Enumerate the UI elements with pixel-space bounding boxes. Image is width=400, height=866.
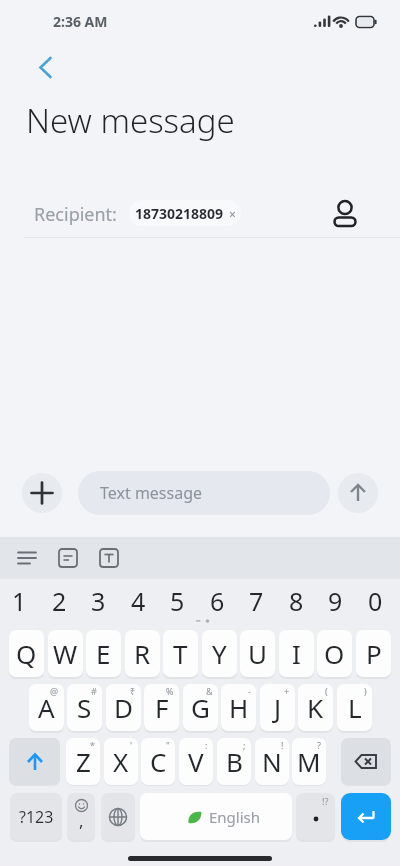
- button[interactable]: [10, 543, 44, 573]
- button[interactable]: [341, 793, 391, 840]
- button[interactable]: English: [140, 793, 292, 840]
- staticText: New message: [26, 98, 235, 143]
- staticText: 2:36 AM: [53, 12, 108, 31]
- button[interactable]: E: [86, 630, 121, 677]
- button[interactable]: O: [317, 630, 352, 677]
- staticText: ": [166, 739, 170, 751]
- button[interactable]: [341, 738, 391, 785]
- button[interactable]: 3: [79, 582, 118, 620]
- button[interactable]: 18730218809: [129, 200, 241, 226]
- staticText: N: [262, 744, 282, 779]
- button[interactable]: F: [144, 684, 179, 731]
- staticText: ;: [243, 739, 246, 751]
- button[interactable]: A: [29, 684, 64, 731]
- staticText: -: [248, 685, 251, 697]
- button[interactable]: ?123: [10, 793, 62, 840]
- staticText: Z: [76, 744, 91, 779]
- button[interactable]: G: [183, 684, 218, 731]
- staticText: V: [188, 744, 204, 779]
- staticText: 18730218809: [135, 204, 224, 223]
- staticText: E: [96, 636, 111, 671]
- staticText: ,: [79, 809, 84, 832]
- button[interactable]: K: [298, 684, 333, 731]
- staticText: M: [297, 744, 321, 779]
- staticText: X: [113, 744, 129, 779]
- staticText: ₹: [130, 685, 136, 697]
- button[interactable]: Y: [202, 630, 237, 677]
- staticText: 7: [249, 584, 264, 618]
- button[interactable]: N: [255, 738, 289, 785]
- staticText: !?: [322, 795, 329, 807]
- staticText: H: [229, 690, 249, 725]
- button[interactable]: P: [356, 630, 391, 677]
- button[interactable]: I: [279, 630, 314, 677]
- button[interactable]: J: [260, 684, 295, 731]
- staticText: 1: [12, 584, 27, 618]
- button[interactable]: 1: [0, 582, 39, 620]
- button[interactable]: [22, 473, 62, 513]
- button[interactable]: [101, 793, 135, 840]
- button[interactable]: B: [217, 738, 251, 785]
- button[interactable]: Text message: [78, 471, 330, 515]
- button[interactable]: [328, 196, 362, 230]
- staticText: 3: [91, 584, 106, 618]
- staticText: 0: [368, 584, 383, 618]
- button[interactable]: 9: [316, 582, 355, 620]
- button[interactable]: 5: [158, 582, 197, 620]
- button[interactable]: 4: [119, 582, 158, 620]
- button[interactable]: R: [125, 630, 160, 677]
- button[interactable]: T: [163, 630, 198, 677]
- staticText: G: [191, 690, 210, 725]
- staticText: B: [226, 744, 243, 779]
- button[interactable]: 6: [198, 582, 237, 620]
- staticText: Q: [16, 636, 37, 671]
- staticText: I: [292, 636, 301, 671]
- staticText: O: [324, 636, 345, 671]
- button[interactable]: 0: [356, 582, 395, 620]
- staticText: &: [206, 685, 213, 697]
- staticText: 5: [170, 584, 185, 618]
- staticText: @: [50, 685, 59, 697]
- button[interactable]: ,: [67, 793, 95, 840]
- staticText: !: [281, 739, 284, 751]
- staticText: Y: [212, 636, 227, 671]
- staticText: 6: [210, 584, 225, 618]
- staticText: ): [364, 685, 367, 697]
- button[interactable]: [92, 543, 126, 573]
- button[interactable]: V: [179, 738, 213, 785]
- button[interactable]: C: [141, 738, 175, 785]
- button[interactable]: 7: [237, 582, 276, 620]
- button[interactable]: Q: [9, 630, 44, 677]
- button[interactable]: D: [106, 684, 141, 731]
- staticText: D: [114, 690, 133, 725]
- button[interactable]: [338, 473, 378, 513]
- button[interactable]: H: [221, 684, 256, 731]
- button[interactable]: S: [67, 684, 102, 731]
- button[interactable]: [28, 48, 64, 84]
- staticText: J: [274, 690, 282, 725]
- staticText: K: [307, 690, 324, 725]
- button[interactable]: X: [104, 738, 138, 785]
- button[interactable]: 8: [277, 582, 316, 620]
- staticText: T: [173, 636, 188, 671]
- button[interactable]: M: [292, 738, 326, 785]
- staticText: +: [284, 685, 290, 697]
- staticText: ?123: [19, 806, 54, 828]
- button[interactable]: [9, 738, 60, 785]
- staticText: U: [248, 636, 268, 671]
- button[interactable]: [51, 543, 85, 573]
- staticText: R: [134, 636, 151, 671]
- staticText: *: [90, 739, 95, 751]
- staticText: F: [155, 690, 169, 725]
- button[interactable]: U: [240, 630, 275, 677]
- staticText: Recipient:: [34, 202, 117, 227]
- button[interactable]: L: [337, 684, 372, 731]
- button[interactable]: 2: [40, 582, 79, 620]
- button[interactable]: !?: [296, 793, 335, 840]
- button[interactable]: W: [48, 630, 83, 677]
- staticText: S: [77, 690, 92, 725]
- staticText: P: [366, 636, 382, 671]
- staticText: (: [325, 685, 328, 697]
- button[interactable]: Z: [66, 738, 100, 785]
- staticText: ?: [317, 739, 321, 751]
